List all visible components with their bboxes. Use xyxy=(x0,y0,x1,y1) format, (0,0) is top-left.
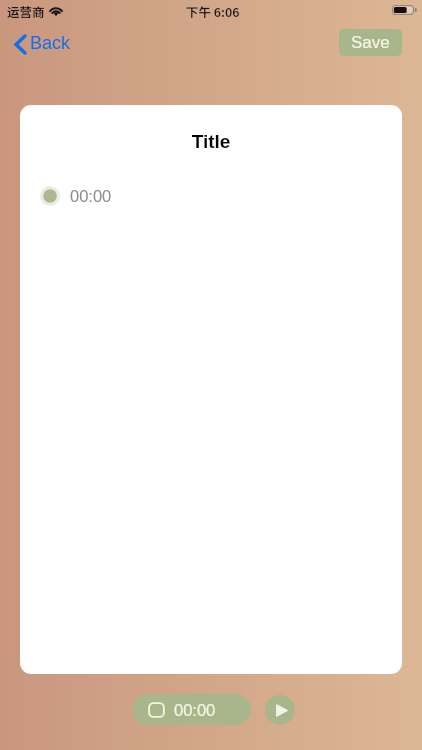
staticText: Back xyxy=(30,33,71,53)
button[interactable]: 00:00 xyxy=(132,694,251,725)
button[interactable]: 00:00 xyxy=(20,181,402,211)
button[interactable]: Play xyxy=(265,695,295,725)
staticText: Save xyxy=(351,33,390,52)
staticText: 00:00 xyxy=(174,701,216,719)
staticText: 00:00 xyxy=(70,187,112,205)
staticText: Title xyxy=(20,131,402,152)
button[interactable]: Back xyxy=(11,28,71,60)
staticText: 下午 6:06 xyxy=(186,2,240,20)
staticText: 运营商 xyxy=(7,2,45,20)
button[interactable]: Save xyxy=(339,29,402,56)
